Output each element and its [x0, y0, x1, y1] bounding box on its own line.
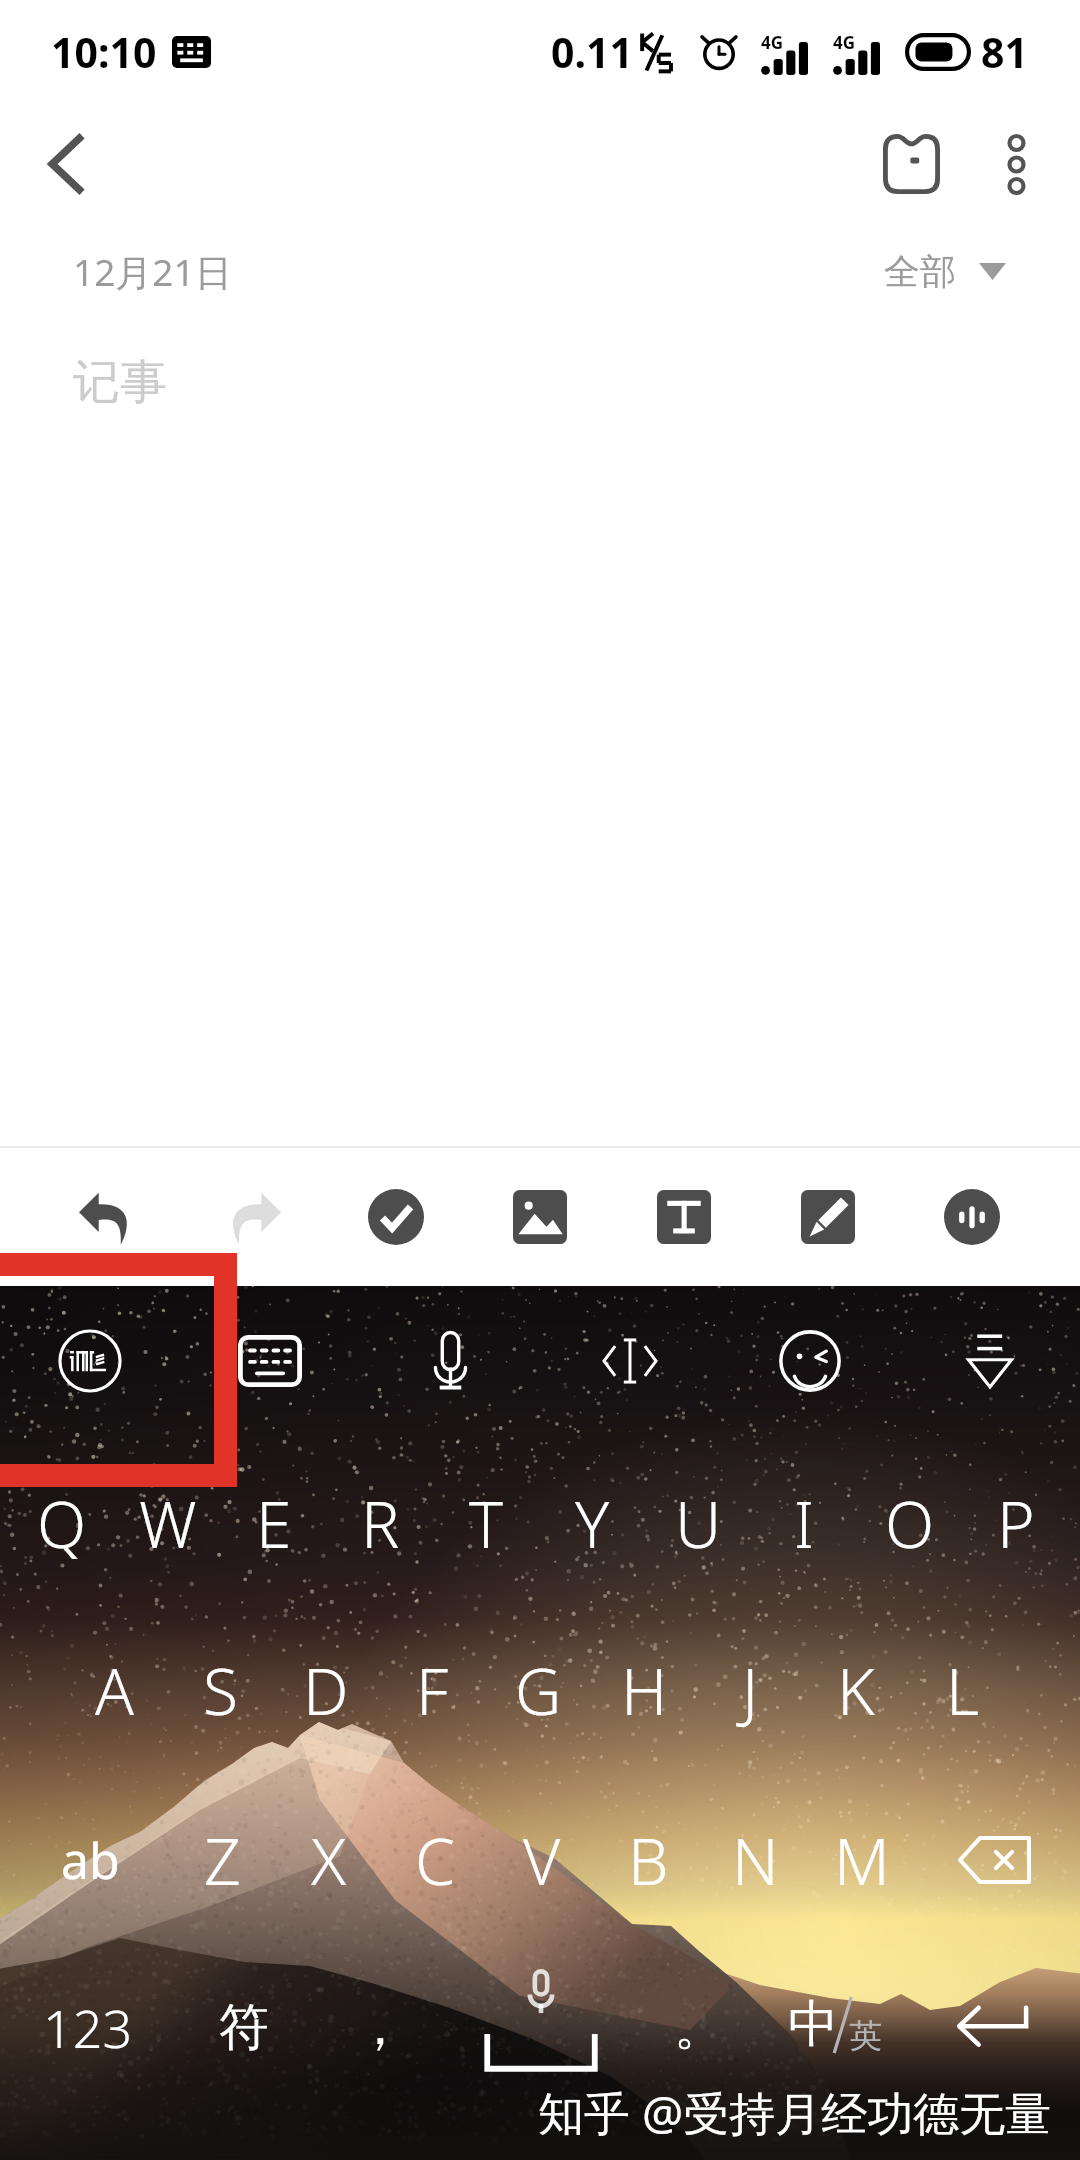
staticText: T [469, 1480, 503, 1567]
staticText: Q [37, 1480, 87, 1567]
button[interactable]: W [115, 1468, 221, 1578]
staticText: B [628, 1817, 669, 1904]
button[interactable]: H [591, 1635, 697, 1745]
staticText: H [621, 1647, 668, 1734]
staticText: 0.11 [551, 24, 633, 80]
staticText: O [885, 1480, 935, 1567]
button[interactable]: 123 [8, 1962, 168, 2092]
staticText: Z [204, 1817, 241, 1904]
staticText: ， [355, 1996, 405, 2059]
button[interactable]: E [221, 1468, 327, 1578]
button[interactable]: P [963, 1468, 1069, 1578]
staticText: 知乎 @受持月经功德无量 [538, 2081, 1052, 2144]
button[interactable]: S [167, 1635, 273, 1745]
staticText: J [742, 1647, 759, 1734]
staticText: 123 [43, 1992, 133, 2063]
button[interactable]: Voice note [900, 1148, 1044, 1286]
staticText: 英 [849, 2015, 882, 2057]
button[interactable]: M [809, 1800, 915, 1920]
button[interactable]: Enter [918, 1962, 1068, 2092]
button[interactable]: Keyboard layout [180, 1286, 360, 1436]
staticText: A [95, 1647, 134, 1734]
staticText: N [732, 1817, 779, 1904]
staticText: 中 [788, 1993, 838, 2053]
button[interactable]: 全部 [884, 249, 1006, 294]
staticText: ab [61, 1826, 120, 1894]
button[interactable]: 符 [171, 1962, 316, 2092]
staticText: 4G [761, 31, 784, 54]
button[interactable]: T [433, 1468, 539, 1578]
staticText: 10:10 [51, 24, 157, 80]
staticText: C [415, 1817, 455, 1904]
button[interactable]: V [489, 1800, 595, 1920]
staticText: X [311, 1817, 347, 1904]
button[interactable]: Text style [612, 1148, 756, 1286]
staticText: P [997, 1480, 1035, 1567]
staticText: 81 [981, 24, 1028, 80]
staticText: F [416, 1647, 449, 1734]
button[interactable]: Task list [324, 1148, 468, 1286]
staticText: L [946, 1647, 979, 1734]
button[interactable]: Reminder [856, 109, 966, 219]
button[interactable]: Space [431, 1962, 651, 2092]
button[interactable]: Draw [756, 1148, 900, 1286]
button[interactable]: F [379, 1635, 485, 1745]
staticText: S [203, 1647, 238, 1734]
button[interactable]: Move cursor [540, 1286, 720, 1436]
button[interactable]: iFlytek input method [0, 1286, 180, 1436]
staticText: I [794, 1480, 814, 1567]
staticText: G [515, 1647, 562, 1734]
staticText: 12月21日 [73, 246, 232, 297]
button[interactable]: Y [539, 1468, 645, 1578]
button[interactable]: Undo [36, 1148, 180, 1286]
staticText: E [256, 1480, 292, 1567]
button[interactable]: Q [9, 1468, 115, 1578]
staticText: D [303, 1647, 349, 1734]
button[interactable]: L [909, 1635, 1015, 1745]
button[interactable]: Z [169, 1800, 275, 1920]
button[interactable]: ab [5, 1800, 175, 1920]
staticText: 4G [833, 31, 856, 54]
button[interactable]: K [803, 1635, 909, 1745]
button[interactable]: Insert image [468, 1148, 612, 1286]
staticText: 全部 [884, 249, 956, 294]
staticText: 。 [674, 1996, 724, 2059]
staticText: V [523, 1817, 561, 1904]
staticText: W [139, 1480, 197, 1567]
staticText: R [361, 1480, 400, 1567]
button[interactable]: B [595, 1800, 701, 1920]
button[interactable]: Switch Chinese English [763, 1962, 913, 2092]
button[interactable]: A [61, 1635, 167, 1745]
staticText: 符 [219, 1996, 269, 2059]
staticText: M [834, 1817, 890, 1904]
button[interactable]: Back [16, 112, 120, 216]
button[interactable]: Voice input [360, 1286, 540, 1436]
button[interactable]: Redo [180, 1148, 324, 1286]
button[interactable]: C [382, 1800, 488, 1920]
button[interactable]: D [273, 1635, 379, 1745]
button[interactable]: J [697, 1635, 803, 1745]
button[interactable]: Emoji [720, 1286, 900, 1436]
button[interactable]: 。 [639, 1962, 759, 2092]
button[interactable]: ， [315, 1962, 445, 2092]
button[interactable]: X [276, 1800, 382, 1920]
button[interactable]: R [327, 1468, 433, 1578]
button[interactable]: U [645, 1468, 751, 1578]
button[interactable]: N [702, 1800, 808, 1920]
button[interactable]: Hide keyboard [900, 1286, 1080, 1436]
staticText: 记事 [73, 353, 167, 412]
staticText: K [837, 1647, 875, 1734]
button[interactable]: I [751, 1468, 857, 1578]
staticText: U [675, 1480, 722, 1567]
button[interactable]: G [485, 1635, 591, 1745]
button[interactable]: More options [966, 114, 1066, 214]
button[interactable]: Backspace [914, 1800, 1074, 1920]
staticText: Y [575, 1480, 610, 1567]
button[interactable]: O [857, 1468, 963, 1578]
